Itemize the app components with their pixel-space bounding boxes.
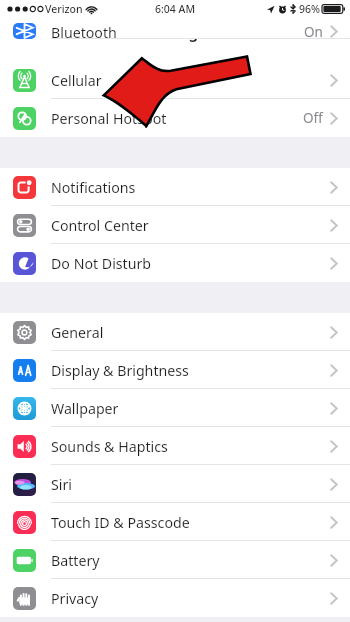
button[interactable]: Sounds & Haptics bbox=[0, 427, 350, 465]
staticText: On bbox=[304, 23, 323, 39]
staticText: Privacy bbox=[51, 589, 99, 608]
staticText: Cellular bbox=[51, 71, 102, 90]
button[interactable]: Touch ID & Passcode bbox=[0, 503, 350, 541]
staticText: Personal Hotspot bbox=[51, 109, 167, 128]
staticText: Control Center bbox=[51, 216, 149, 235]
button[interactable]: Wallpaper bbox=[0, 389, 350, 427]
button[interactable]: Personal Hotspot bbox=[0, 99, 350, 137]
staticText: Siri bbox=[51, 475, 72, 494]
staticText: Off bbox=[303, 109, 323, 127]
staticText: Battery bbox=[51, 551, 100, 570]
staticText: Notifications bbox=[51, 178, 136, 197]
button[interactable]: Siri bbox=[0, 465, 350, 503]
button[interactable]: Bluetooth bbox=[0, 23, 350, 39]
staticText: Bluetooth bbox=[51, 23, 117, 39]
button[interactable]: General bbox=[0, 313, 350, 351]
staticText: 6:04 AM bbox=[155, 2, 196, 16]
button[interactable]: Cellular bbox=[0, 61, 350, 99]
staticText: Settings bbox=[144, 21, 206, 42]
staticText: Sounds & Haptics bbox=[51, 437, 168, 456]
staticText: Touch ID & Passcode bbox=[51, 513, 190, 532]
button[interactable]: Control Center bbox=[0, 206, 350, 244]
button[interactable]: Battery bbox=[0, 541, 350, 579]
staticText: Verizon bbox=[45, 2, 83, 16]
button[interactable]: Privacy bbox=[0, 579, 350, 617]
staticText: General bbox=[51, 323, 104, 342]
staticText: Wallpaper bbox=[51, 399, 119, 418]
staticText: Display & Brightness bbox=[51, 361, 189, 380]
staticText: Do Not Disturb bbox=[51, 254, 152, 273]
button[interactable]: Notifications bbox=[0, 168, 350, 206]
staticText: 96% bbox=[299, 2, 320, 16]
button[interactable]: Bluetooth bbox=[0, 45, 350, 61]
button[interactable]: Display & Brightness bbox=[0, 351, 350, 389]
button[interactable]: Do Not Disturb bbox=[0, 244, 350, 282]
